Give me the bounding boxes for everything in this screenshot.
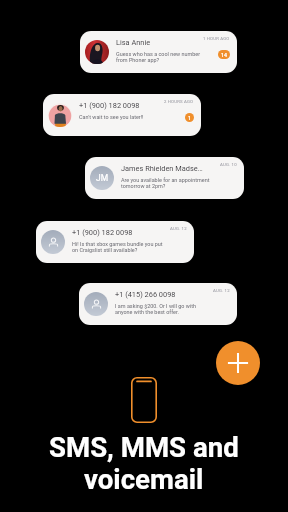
staticText: AUG. 10 — [220, 162, 237, 167]
staticText: +1 (415) 266 0098 — [115, 290, 229, 299]
staticText: AUG. 12 — [170, 226, 187, 231]
staticText: Guess who has a cool new number — [116, 51, 201, 57]
button[interactable]: +1 (900) 182 0098 — [43, 94, 201, 136]
button[interactable]: New message — [216, 341, 260, 385]
staticText: 14 — [221, 52, 228, 58]
staticText: 2 HOURS AGO — [164, 99, 194, 104]
button[interactable]: +1 (900) 182 0098 — [36, 221, 194, 263]
staticText: James Rhielden Madse… — [121, 164, 236, 173]
staticText: on Craigslist still available? — [72, 247, 138, 253]
staticText: voicemail — [84, 463, 204, 495]
button[interactable]: JM — [85, 157, 244, 199]
button[interactable]: Lisa Annie — [80, 31, 237, 73]
staticText: +1 (900) 182 0098 — [72, 228, 187, 237]
staticText: 1 — [188, 115, 192, 121]
staticText: I am asking $200. Or I will go with — [115, 303, 197, 309]
staticText: anyone with the best offer. — [115, 309, 179, 315]
staticText: Can't wait to see you later!! — [79, 114, 144, 120]
staticText: +1 (900) 182 0098 — [79, 101, 193, 110]
staticText: Lisa Annie — [116, 38, 229, 47]
staticText: JM — [96, 173, 109, 183]
other: Phone — [131, 377, 157, 423]
staticText: tomorrow at 2pm? — [121, 183, 166, 189]
staticText: Are you available for an appointment — [121, 177, 210, 183]
staticText: 1 HOUR AGO — [203, 36, 230, 41]
staticText: SMS, MMS and — [49, 431, 239, 463]
staticText: AUG. 12 — [213, 288, 230, 293]
button[interactable]: +1 (415) 266 0098 — [79, 283, 237, 325]
staticText: Hi! Is that xbox games bundle you put — [72, 241, 163, 247]
staticText: from Phoner app? — [116, 57, 160, 63]
